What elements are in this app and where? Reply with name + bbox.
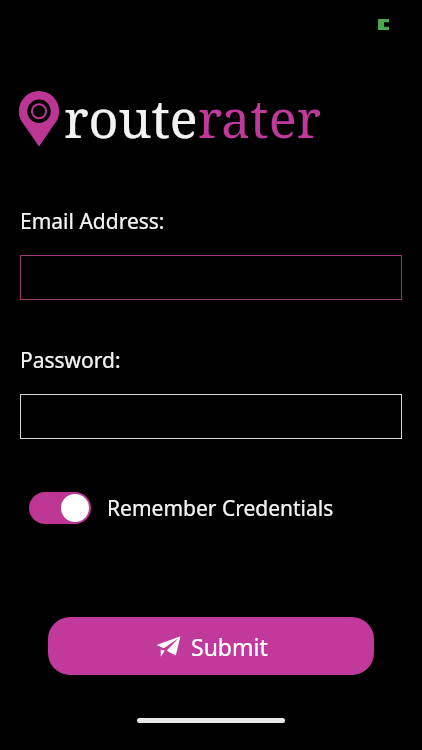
staticText: Remember Credentials — [107, 494, 334, 523]
button[interactable]: Submit — [48, 617, 374, 675]
button[interactable]: Remember Credentials — [29, 492, 334, 524]
other: RouteRater logo — [18, 89, 60, 147]
button[interactable]: Password input field — [20, 394, 402, 439]
staticText: Password: — [20, 346, 121, 375]
button[interactable]: Email Address input field — [20, 255, 402, 300]
other: Status indicator — [378, 19, 389, 30]
staticText: Submit — [191, 631, 268, 662]
staticText: Email Address: — [20, 207, 165, 236]
staticText: routerater — [64, 82, 321, 153]
